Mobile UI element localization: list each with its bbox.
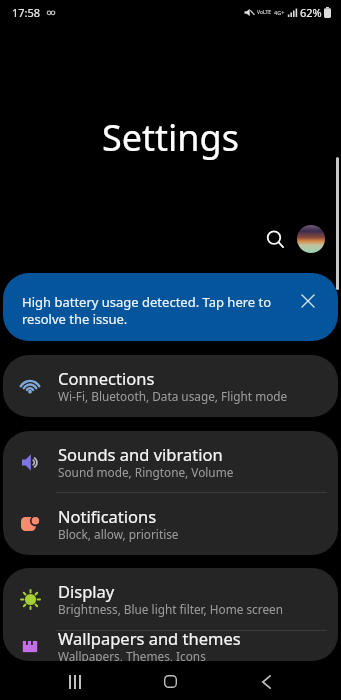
staticText: Wi-Fi, Bluetooth, Data usage, Flight mod… [58, 388, 288, 404]
staticText: High battery usage detected. Tap here to… [22, 293, 280, 328]
staticText: Wallpapers and themes [58, 627, 241, 649]
staticText: Block, allow, prioritise [58, 526, 179, 542]
button[interactable]: Wallpapers and themes [3, 615, 338, 661]
button[interactable]: Sounds and vibration [3, 431, 338, 493]
staticText: VoLTE [257, 9, 272, 16]
staticText: Sounds and vibration [58, 443, 223, 465]
button[interactable]: Home [149, 662, 191, 700]
button[interactable]: Display [3, 568, 338, 630]
button[interactable]: Connections [3, 355, 338, 417]
staticText: Brightness, Blue light filter, Home scre… [58, 601, 283, 617]
staticText: 17:58 [12, 5, 41, 20]
button[interactable]: Back [245, 662, 287, 700]
staticText: Settings [102, 113, 239, 162]
staticText: Connections [58, 367, 155, 389]
button[interactable]: Profile [297, 225, 325, 253]
staticText: Display [58, 580, 115, 602]
staticText: 4G+ [274, 9, 285, 16]
button[interactable]: Search [261, 225, 289, 253]
staticText: Sound mode, Ringtone, Volume [58, 464, 234, 480]
button[interactable]: Close [293, 286, 322, 315]
staticText: Wallpapers, Themes, Icons [58, 648, 206, 661]
button[interactable]: Recents [54, 662, 96, 700]
button[interactable]: High battery usage detected. Tap here to… [3, 273, 338, 341]
staticText: 62% [300, 5, 322, 20]
staticText: Notifications [58, 505, 157, 527]
button[interactable]: Notifications [3, 493, 338, 555]
